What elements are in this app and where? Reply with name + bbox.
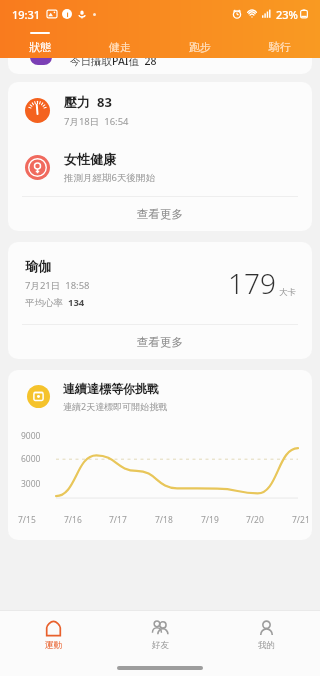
staticText: 134 [68,296,85,309]
button[interactable]: 好友 [106,619,213,651]
button[interactable]: 騎行 [240,32,320,54]
button[interactable]: 運動 [0,620,106,651]
button[interactable]: 瑜伽 [8,242,312,324]
staticText: 今日攝取PAI值 28 [70,58,157,68]
staticText: 7/20 [246,514,264,526]
staticText: 7月21日 18:58 [25,279,90,292]
staticText: 女性健康 [64,151,116,167]
staticText: 狀態 [29,40,51,54]
staticText: 179 [228,264,276,302]
staticText: 7月18日 16:54 [64,115,129,128]
staticText: 7/16 [64,514,82,526]
staticText: 健走 [109,40,131,54]
staticText: 好友 [152,640,169,651]
button[interactable]: 狀態 [0,32,80,54]
staticText: 查看更多 [137,335,183,349]
staticText: 運動 [45,640,62,651]
button[interactable]: 查看更多 [8,325,312,359]
button[interactable]: 女性健康 [8,139,312,196]
staticText: 大卡 [279,287,296,298]
staticText: 壓力 [64,94,90,110]
staticText: 騎行 [269,40,291,54]
staticText: 我的 [258,640,275,651]
staticText: 9000 [21,430,41,442]
staticText: 平均心率 [25,297,63,309]
staticText: 3000 [21,478,41,490]
button[interactable]: 健走 [80,32,160,54]
button[interactable]: 壓力 [8,82,312,139]
staticText: 推測月經期6天後開始 [64,171,155,184]
staticText: 查看更多 [137,207,183,221]
staticText: 7/17 [109,514,127,526]
staticText: 連續2天達標即可開始挑戰 [63,400,168,412]
button[interactable]: 我的 [213,620,320,651]
staticText: 連續達標等你挑戰 [63,381,159,396]
staticText: 6000 [21,453,41,465]
staticText: 23% [276,7,298,22]
button[interactable]: 今日攝取PAI值 28 [8,58,312,74]
staticText: 83 [97,93,112,111]
button[interactable]: 跑步 [160,32,240,54]
button[interactable]: 查看更多 [8,197,312,231]
staticText: 19:31 [12,7,41,22]
staticText: 7/15 [18,514,36,526]
button[interactable]: 連續達標等你挑戰 [8,370,312,540]
staticText: 跑步 [189,40,211,54]
staticText: 7/18 [155,514,173,526]
staticText: 7/21 [292,514,310,526]
staticText: 7/19 [201,514,219,526]
staticText: 瑜伽 [25,258,51,274]
